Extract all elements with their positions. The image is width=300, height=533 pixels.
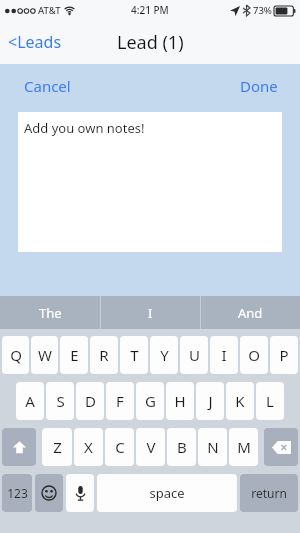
button[interactable]: space <box>97 474 237 512</box>
staticText: <Leads <box>8 31 62 53</box>
staticText: Z <box>53 437 62 457</box>
staticText: I <box>221 345 227 365</box>
button[interactable]: Add you own notes! <box>18 112 282 252</box>
staticText: space <box>149 484 185 502</box>
button[interactable]: H <box>166 382 194 420</box>
staticText: B <box>177 437 187 457</box>
button[interactable]: Backspace <box>264 428 298 466</box>
button[interactable]: return <box>240 474 298 512</box>
staticText: Cancel <box>24 76 71 96</box>
button[interactable]: 123 <box>2 474 32 512</box>
staticText: D <box>85 391 96 411</box>
staticText: W <box>38 345 52 365</box>
staticText: And <box>238 304 263 322</box>
button[interactable]: V <box>136 428 165 466</box>
button[interactable]: G <box>136 382 164 420</box>
button[interactable]: R <box>90 336 118 374</box>
staticText: return <box>251 485 287 501</box>
staticText: I <box>148 304 153 322</box>
staticText: 123 <box>7 485 28 501</box>
staticText: 73% <box>253 4 272 17</box>
staticText: S <box>56 391 65 411</box>
button[interactable]: U <box>180 336 208 374</box>
button[interactable]: J <box>196 382 224 420</box>
button[interactable]: Z <box>42 428 72 466</box>
button[interactable]: L <box>256 382 284 420</box>
button[interactable]: Q <box>2 336 29 374</box>
staticText: Done <box>240 76 278 96</box>
staticText: Add you own notes! <box>24 119 145 137</box>
button[interactable]: T <box>120 336 148 374</box>
button[interactable]: Dictation <box>66 474 94 512</box>
staticText: G <box>145 391 156 411</box>
staticText: E <box>70 345 79 365</box>
button[interactable]: F <box>106 382 134 420</box>
staticText: V <box>146 437 156 457</box>
button[interactable]: Shift <box>2 428 36 466</box>
staticText: H <box>174 391 186 411</box>
button[interactable]: Emoji <box>35 474 63 512</box>
staticText: T <box>130 345 139 365</box>
staticText: A <box>25 391 35 411</box>
button[interactable]: X <box>74 428 103 466</box>
staticText: Y <box>160 345 169 365</box>
staticText: J <box>208 391 213 411</box>
staticText: N <box>207 437 219 457</box>
button[interactable]: The <box>0 296 100 329</box>
button[interactable]: S <box>46 382 74 420</box>
staticText: F <box>116 391 124 411</box>
button[interactable]: E <box>60 336 88 374</box>
staticText: C <box>115 437 125 457</box>
staticText: Q <box>10 345 22 365</box>
button[interactable]: N <box>198 428 227 466</box>
button[interactable]: Y <box>150 336 178 374</box>
staticText: K <box>235 391 245 411</box>
button[interactable]: P <box>270 336 298 374</box>
button[interactable]: C <box>105 428 134 466</box>
staticText: Lead (1) <box>117 30 184 55</box>
button[interactable]: W <box>31 336 58 374</box>
button[interactable]: D <box>76 382 104 420</box>
staticText: P <box>279 345 289 365</box>
button[interactable]: K <box>226 382 254 420</box>
button[interactable]: A <box>16 382 44 420</box>
staticText: 4:21 PM <box>131 3 169 17</box>
staticText: The <box>39 304 62 322</box>
button[interactable]: I <box>101 296 200 329</box>
staticText: AT&T <box>38 4 61 17</box>
button[interactable]: B <box>167 428 196 466</box>
staticText: R <box>99 345 109 365</box>
staticText: O <box>248 345 260 365</box>
button[interactable]: M <box>229 428 258 466</box>
staticText: U <box>189 345 200 365</box>
button[interactable]: I <box>210 336 238 374</box>
staticText: L <box>266 391 274 411</box>
button[interactable]: Cancel <box>0 68 85 104</box>
staticText: X <box>84 437 93 457</box>
button[interactable]: O <box>240 336 268 374</box>
button[interactable]: <Leads <box>0 25 72 59</box>
button[interactable]: Done <box>226 68 300 104</box>
staticText: M <box>237 437 251 457</box>
button[interactable]: And <box>201 296 300 329</box>
